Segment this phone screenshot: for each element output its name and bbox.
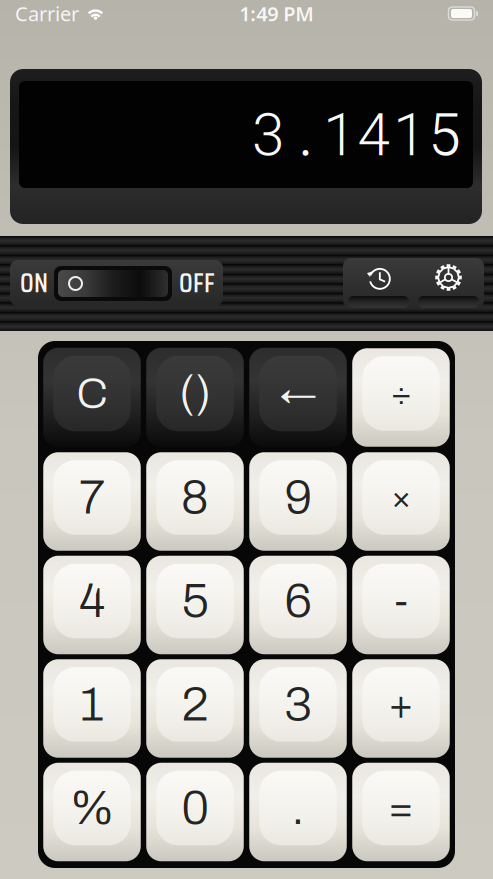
button[interactable]: . [249, 763, 347, 861]
staticText: ON [20, 262, 48, 304]
staticText: 9 [284, 471, 311, 524]
staticText: Carrier [15, 0, 79, 27]
staticText: 3 [284, 678, 311, 731]
button[interactable]: % [43, 763, 141, 861]
staticText: () [179, 369, 211, 418]
staticText: 0 [181, 782, 208, 834]
button[interactable]: 7 [43, 452, 141, 551]
button[interactable]: 1 [43, 659, 141, 758]
staticText: + [388, 683, 413, 726]
staticText: 7 [79, 471, 105, 524]
button[interactable]: ← [249, 348, 347, 447]
button[interactable]: = [352, 763, 450, 861]
button[interactable]: 9 [249, 452, 347, 551]
button[interactable]: 4 [43, 556, 141, 654]
staticText: . [291, 782, 304, 834]
button[interactable]: + [352, 659, 450, 758]
button[interactable]: () [146, 348, 244, 447]
staticText: = [388, 786, 413, 830]
staticText: 1:49 PM [239, 0, 314, 27]
button[interactable]: 0 [146, 763, 244, 861]
button[interactable]: 3 [249, 659, 347, 758]
button[interactable]: 5 [146, 556, 244, 654]
button[interactable]: 6 [249, 556, 347, 654]
staticText: % [69, 782, 114, 834]
staticText: 4 [79, 575, 105, 627]
button[interactable]: Power [10, 260, 223, 306]
staticText: 1 [80, 678, 104, 731]
staticText: 5 [181, 575, 208, 627]
staticText: ÷ [390, 375, 411, 412]
staticText: OFF [179, 262, 215, 304]
button[interactable]: - [352, 556, 450, 654]
button[interactable]: 2 [146, 659, 244, 758]
button[interactable]: 8 [146, 452, 244, 551]
staticText: 6 [284, 575, 311, 627]
button[interactable]: ÷ [352, 348, 450, 447]
staticText: C [76, 370, 107, 417]
button[interactable]: C [43, 348, 141, 447]
staticText: 2 [181, 678, 208, 731]
staticText: ← [279, 373, 316, 414]
staticText: × [390, 479, 411, 516]
staticText: - [394, 579, 407, 623]
button[interactable]: × [352, 452, 450, 551]
button[interactable]: Settings [415, 258, 482, 308]
staticText: 3.1415 [252, 94, 462, 171]
staticText: 8 [181, 471, 209, 524]
button[interactable]: History [345, 258, 412, 308]
